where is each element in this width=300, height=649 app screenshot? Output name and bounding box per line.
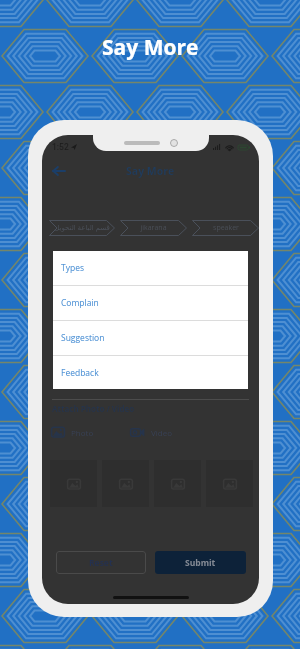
button[interactable]: jikarana: [120, 220, 187, 236]
staticText: Types: [61, 262, 84, 274]
staticText: Submit: [185, 557, 216, 569]
button[interactable]: Back: [46, 159, 70, 183]
staticText: 1:52: [52, 142, 69, 152]
staticText: Feedback: [61, 367, 99, 379]
button[interactable]: Types: [53, 251, 248, 285]
staticText: Complain: [61, 297, 99, 309]
staticText: Photo: [71, 427, 94, 438]
staticText: Say More: [102, 33, 199, 62]
staticText: Attach Photo / Video: [52, 403, 135, 414]
button[interactable]: speaker: [192, 220, 259, 236]
staticText: Say More: [126, 164, 175, 178]
staticText: Video: [151, 427, 172, 438]
staticText: speaker: [213, 223, 239, 233]
button[interactable]: Submit: [155, 551, 246, 574]
button[interactable]: Feedback: [53, 356, 248, 389]
button[interactable]: Reset: [56, 551, 146, 574]
button[interactable]: قسم الباعة التحويل: [49, 220, 115, 236]
button[interactable]: Suggestion: [53, 321, 248, 355]
button[interactable]: Complain: [53, 286, 248, 320]
staticText: قسم الباعة التحويل: [54, 223, 110, 233]
staticText: jikarana: [140, 223, 167, 233]
button[interactable]: Video: [130, 427, 172, 438]
button[interactable]: Photo: [51, 426, 94, 438]
staticText: Suggestion: [61, 332, 105, 344]
staticText: Reset: [89, 557, 113, 569]
